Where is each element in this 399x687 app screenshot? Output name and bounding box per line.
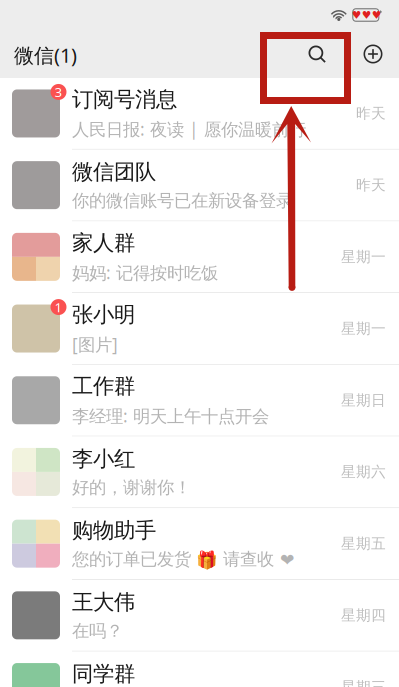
button[interactable]: 3 (0, 78, 399, 150)
staticText: 星期一 (341, 319, 386, 337)
staticText: 妈妈: 记得按时吃饭 (72, 261, 218, 284)
button[interactable]: 购物助手 (0, 508, 399, 580)
staticText: 星期三 (341, 678, 386, 687)
staticText: 微信团队 (72, 159, 156, 185)
staticText: 好的，谢谢你！ (72, 477, 191, 498)
staticText: 王大伟 (72, 589, 135, 615)
button[interactable]: 李小红 (0, 436, 399, 508)
staticText: ♥ (352, 9, 362, 21)
staticText: 星期五 (341, 535, 386, 553)
button[interactable]: 微信团队 (0, 150, 399, 221)
staticText: 星期六 (341, 463, 386, 481)
staticText: 1 (54, 298, 62, 316)
staticText: 您的订单已发货 🎁 请查收 ❤ (72, 549, 295, 570)
staticText: 在吗？ (72, 620, 123, 642)
staticText: 家人群 (72, 230, 135, 256)
staticText: 工作群 (72, 373, 135, 399)
staticText: 星期一 (341, 248, 386, 266)
staticText: [图片] (72, 333, 118, 356)
button[interactable]: 搜索 (296, 30, 338, 78)
staticText: 订阅号消息 (72, 86, 177, 112)
staticText: 星期日 (341, 391, 386, 409)
staticText: 人民日报: 夜读 | 愿你温暖前行 (72, 117, 306, 140)
button[interactable]: 添加 (352, 30, 394, 78)
staticText: 购物助手 (72, 517, 156, 544)
staticText: 你的微信账号已在新设备登录 (72, 190, 293, 211)
staticText: 昨天 (356, 176, 386, 194)
staticText: 星期四 (341, 606, 386, 624)
staticText: 昨天 (356, 104, 386, 122)
staticText: 3 (54, 83, 62, 101)
button[interactable]: 同学群 (0, 652, 399, 687)
button[interactable]: 家人群 (0, 221, 399, 293)
staticText: 李小红 (72, 446, 135, 472)
staticText: 李经理: 明天上午十点开会 (72, 404, 269, 427)
staticText: 同学群 (72, 661, 135, 687)
staticText: ♥ (362, 9, 372, 21)
staticText: 张小明 (72, 301, 135, 328)
staticText: ♥ (372, 9, 382, 21)
button[interactable]: 1 (0, 293, 399, 365)
button[interactable]: 工作群 (0, 365, 399, 436)
button[interactable]: 王大伟 (0, 580, 399, 652)
staticText: 微信(1) (14, 42, 77, 68)
